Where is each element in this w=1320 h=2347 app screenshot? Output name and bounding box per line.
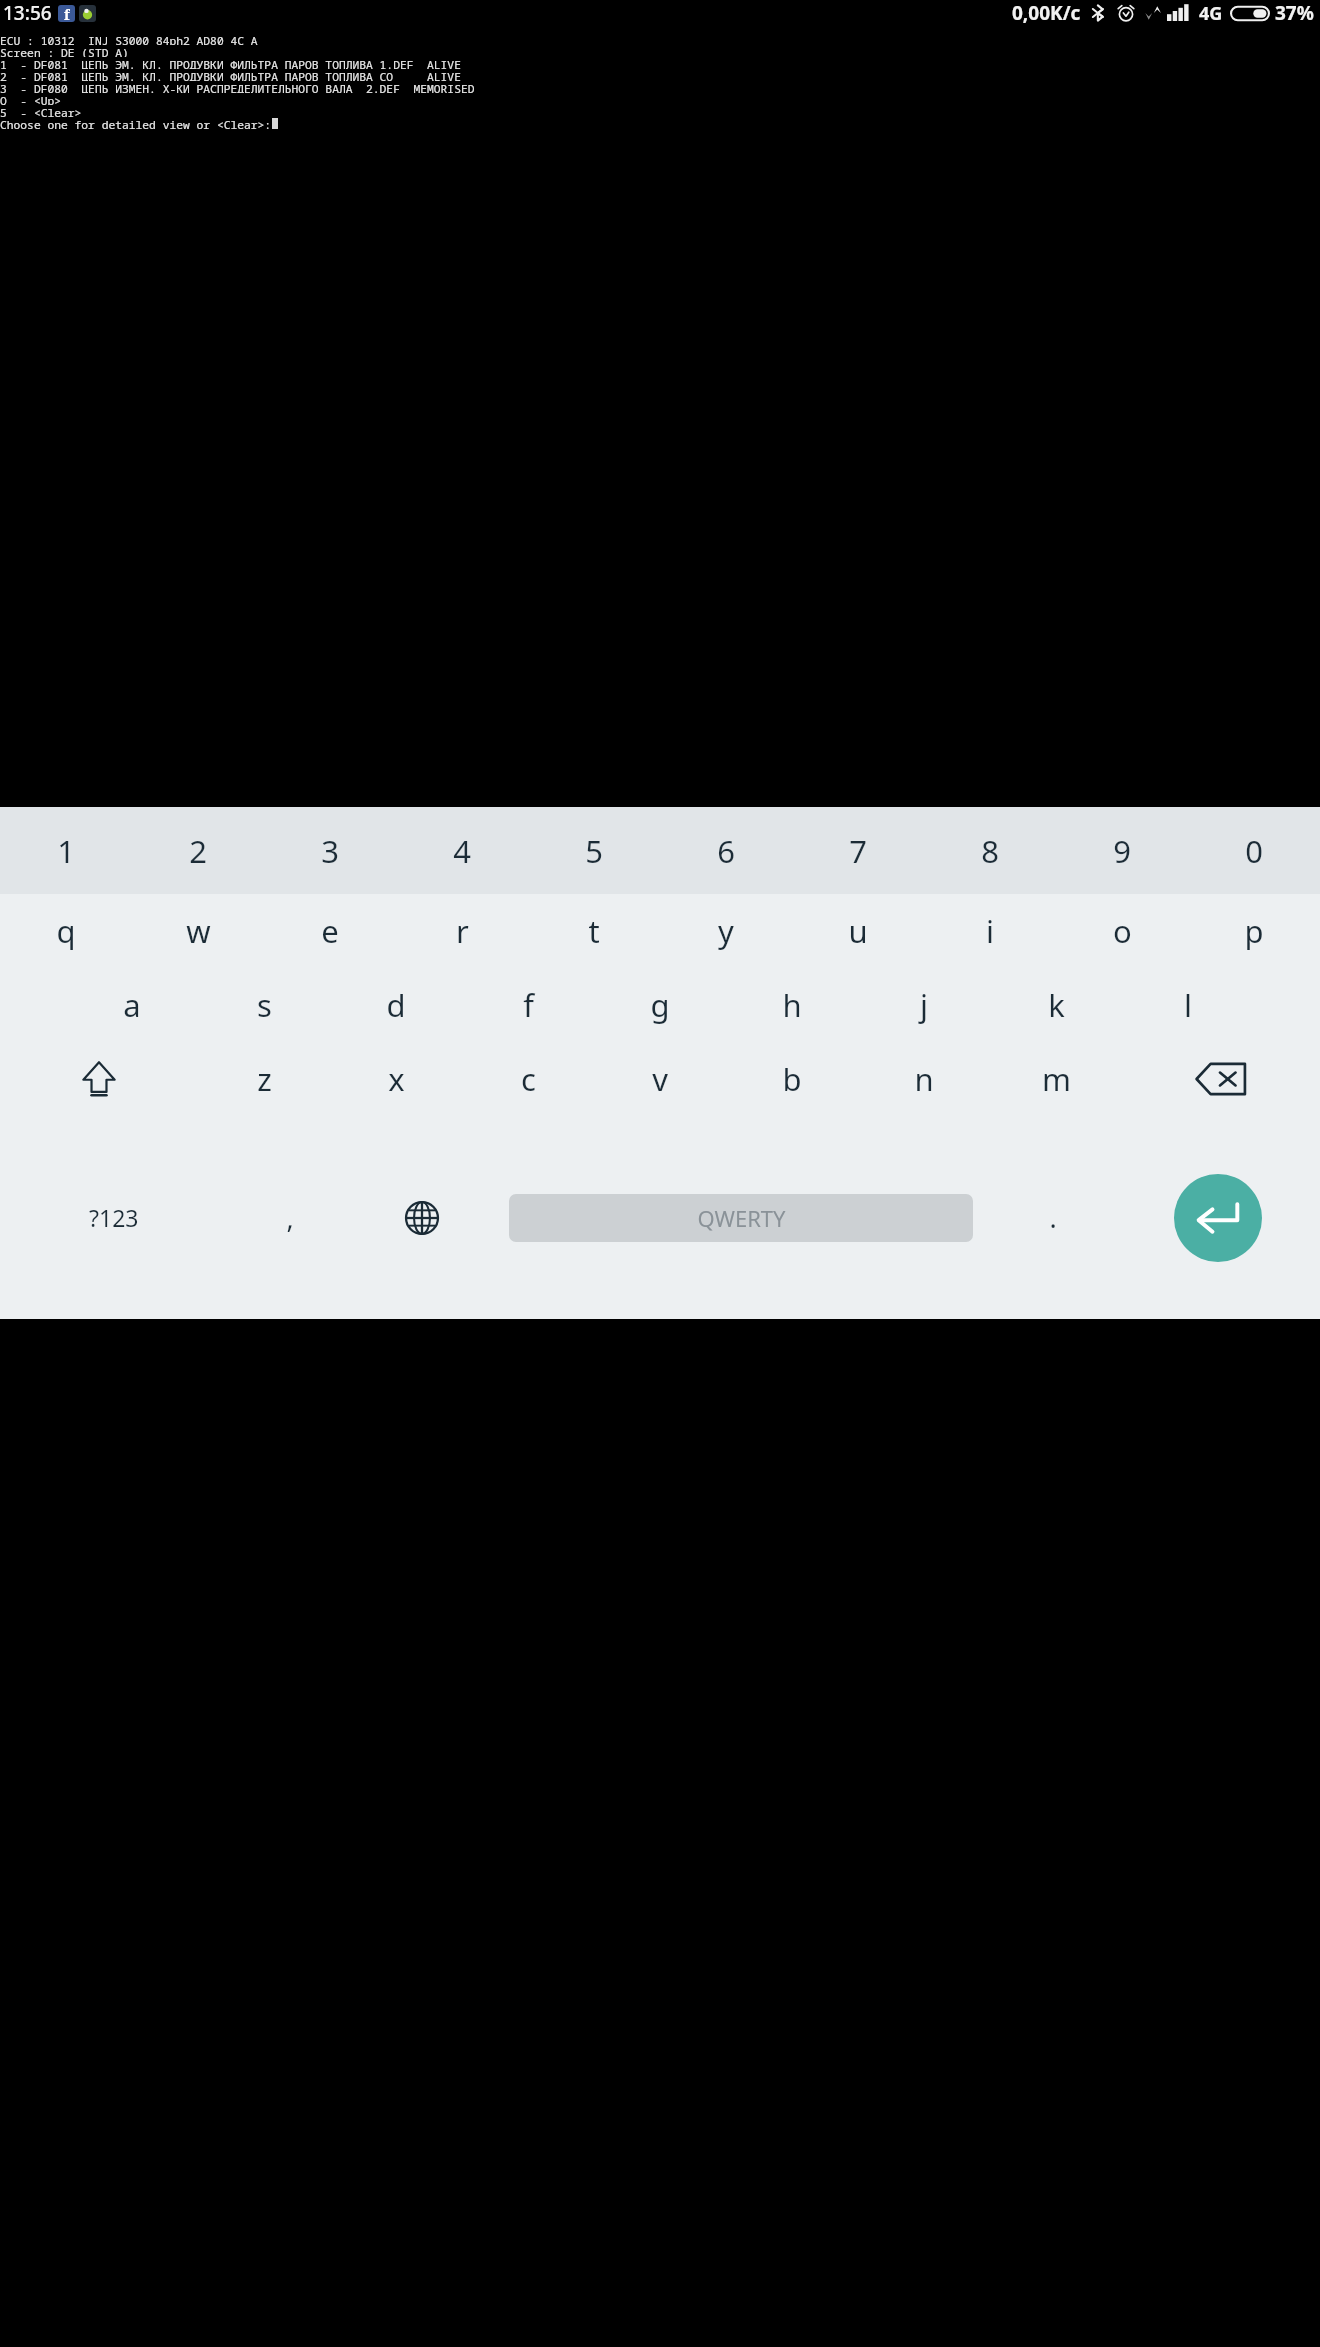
button[interactable]: s — [198, 968, 330, 1042]
staticText: g — [650, 984, 670, 1026]
staticText: 8 — [981, 830, 999, 872]
button[interactable]: Change language — [352, 1116, 491, 1319]
staticText: r — [456, 910, 469, 952]
staticText: h — [782, 984, 802, 1026]
button[interactable]: 7 — [792, 807, 924, 894]
staticText: Screen : DE (STD_A) — [0, 45, 129, 57]
button[interactable]: 9 — [1056, 807, 1188, 894]
staticText: a — [123, 984, 141, 1026]
button[interactable]: q — [0, 894, 132, 968]
staticText: 9 — [1113, 830, 1131, 872]
staticText: 1 — [57, 830, 75, 872]
staticText: Q - <Up> — [0, 93, 62, 105]
button[interactable]: g — [594, 968, 726, 1042]
button[interactable]: i — [924, 894, 1056, 968]
button[interactable]: j — [858, 968, 990, 1042]
staticText: 3 - DF080 ЦЕПЬ ИЗМЕН. Х-КИ РАСПРЕДЕЛИТЕЛ… — [0, 81, 475, 93]
staticText: f — [64, 5, 70, 22]
staticText: e — [321, 910, 339, 952]
staticText: v — [652, 1058, 668, 1100]
button[interactable]: p — [1188, 894, 1320, 968]
staticText: 0,00K/c — [1012, 0, 1081, 26]
button[interactable]: ?123 — [0, 1116, 227, 1319]
button[interactable]: 4 — [396, 807, 528, 894]
button[interactable]: t — [528, 894, 660, 968]
button[interactable]: c — [462, 1042, 594, 1116]
staticText: 4 — [453, 830, 471, 872]
button[interactable]: b — [726, 1042, 858, 1116]
button[interactable]: e — [264, 894, 396, 968]
staticText: 0 — [1245, 830, 1263, 872]
staticText: 4G — [1199, 1, 1223, 26]
button[interactable]: f — [462, 968, 594, 1042]
staticText: 5 - <Clear> — [0, 105, 82, 117]
button[interactable]: 2 — [132, 807, 264, 894]
button[interactable]: , — [227, 1116, 352, 1319]
staticText: c — [521, 1058, 536, 1100]
button[interactable]: u — [792, 894, 924, 968]
staticText: i — [986, 910, 994, 952]
button[interactable]: o — [1056, 894, 1188, 968]
staticText: o — [1113, 910, 1132, 952]
staticText: b — [782, 1058, 802, 1100]
button[interactable]: 3 — [264, 807, 396, 894]
button[interactable]: Enter — [1174, 1174, 1262, 1262]
staticText: 3 — [321, 830, 339, 872]
button[interactable]: 8 — [924, 807, 1056, 894]
staticText: ?123 — [89, 1202, 139, 1233]
button[interactable]: v — [594, 1042, 726, 1116]
button[interactable]: 0 — [1188, 807, 1320, 894]
staticText: 6 — [717, 830, 735, 872]
button[interactable]: l — [1122, 968, 1254, 1042]
button[interactable]: y — [660, 894, 792, 968]
staticText: j — [920, 984, 928, 1026]
staticText: 7 — [849, 830, 867, 872]
staticText: 37% — [1275, 0, 1314, 26]
staticText: l — [1184, 984, 1192, 1026]
staticText: x — [388, 1058, 405, 1100]
staticText: u — [848, 910, 868, 952]
staticText: , — [286, 1199, 294, 1236]
staticText: p — [1244, 910, 1264, 952]
button[interactable]: 1 — [0, 807, 132, 894]
button[interactable]: 5 — [528, 807, 660, 894]
staticText: n — [914, 1058, 934, 1100]
button[interactable]: n — [858, 1042, 990, 1116]
staticText: QWERTY — [697, 1203, 786, 1233]
staticText: ECU : 10312 INJ_S3000_84ph2_AD80_4C_A — [0, 33, 258, 45]
button[interactable]: x — [330, 1042, 462, 1116]
staticText: q — [56, 910, 76, 952]
button[interactable]: a — [66, 968, 198, 1042]
staticText: f — [523, 984, 534, 1026]
staticText: 2 - DF081 ЦЕПЬ ЭМ. КЛ. ПРОДУВКИ ФИЛЬТРА … — [0, 69, 461, 81]
button[interactable]: r — [396, 894, 528, 968]
button[interactable]: w — [132, 894, 264, 968]
button[interactable]: h — [726, 968, 858, 1042]
staticText: k — [1048, 984, 1065, 1026]
staticText: m — [1042, 1058, 1071, 1100]
staticText: . — [1049, 1199, 1057, 1236]
staticText: d — [386, 984, 406, 1026]
button[interactable]: k — [990, 968, 1122, 1042]
staticText: 2 — [189, 830, 207, 872]
staticText: t — [588, 910, 600, 952]
staticText: 13:56 — [3, 0, 52, 26]
button[interactable]: z — [198, 1042, 330, 1116]
button[interactable]: QWERTY — [509, 1194, 973, 1242]
staticText: Choose one for detailed view or <Clear>: — [0, 117, 272, 129]
staticText: z — [257, 1058, 272, 1100]
staticText: 1 - DF081 ЦЕПЬ ЭМ. КЛ. ПРОДУВКИ ФИЛЬТРА … — [0, 57, 461, 69]
button[interactable]: 6 — [660, 807, 792, 894]
staticText: w — [186, 910, 211, 952]
staticText: s — [257, 984, 272, 1026]
button[interactable]: . — [990, 1116, 1115, 1319]
staticText: 5 — [585, 830, 603, 872]
button[interactable]: d — [330, 968, 462, 1042]
button[interactable]: m — [990, 1042, 1122, 1116]
button[interactable]: Backspace — [1122, 1042, 1320, 1116]
button[interactable]: Shift — [0, 1042, 198, 1116]
staticText: y — [718, 910, 734, 952]
